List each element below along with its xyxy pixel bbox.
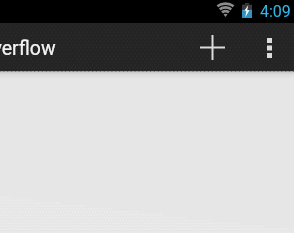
staticText: Overflow [0, 37, 56, 60]
button[interactable]: More options [245, 24, 293, 72]
staticText: 4:09 [260, 2, 291, 21]
button[interactable]: Add [188, 23, 236, 71]
